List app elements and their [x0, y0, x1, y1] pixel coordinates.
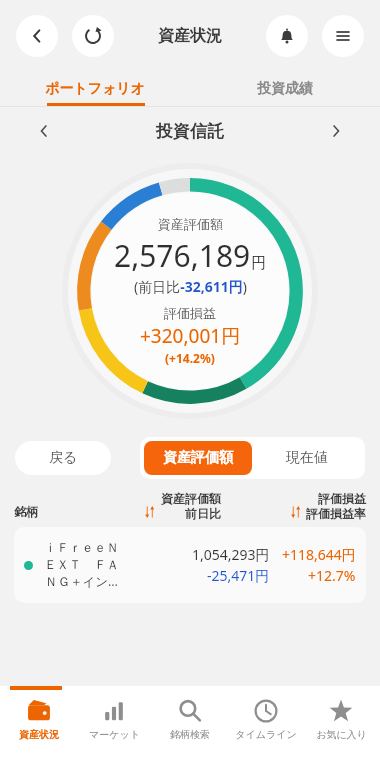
staticText: -25,471円 [207, 566, 270, 585]
staticText: 円 [251, 254, 266, 273]
staticText: +118,644円 [282, 545, 356, 564]
button[interactable]: 評価損益 [229, 491, 366, 521]
staticText: 1,054,293円 [192, 545, 270, 564]
button[interactable]: 銘柄検索 [153, 694, 227, 745]
button[interactable]: お気に入り [304, 694, 378, 745]
staticText: ｉＦｒｅｅＮ [44, 540, 119, 556]
staticText: ポートフォリオ [45, 80, 145, 98]
staticText: タイムライン [235, 728, 297, 741]
staticText: 資産評価額 [158, 216, 223, 232]
button[interactable]: タイムライン [229, 694, 303, 745]
staticText: 資産評価額 [161, 491, 221, 506]
button[interactable]: 現在値 [252, 441, 361, 475]
button[interactable]: Previous [28, 115, 60, 147]
button[interactable]: 資産状況 [2, 694, 76, 745]
staticText: 評価損益 [164, 305, 216, 321]
staticText: 投資信託 [156, 121, 224, 142]
staticText: 資産状況 [158, 26, 222, 46]
button[interactable]: Next [320, 115, 352, 147]
button[interactable]: ｉＦｒｅｅＮ [14, 527, 366, 603]
staticText: 投資成績 [257, 80, 313, 98]
button[interactable]: マーケット [77, 694, 151, 745]
button[interactable]: 戻る [15, 441, 111, 475]
staticText: +12.7% [308, 566, 356, 585]
staticText: ＮＧ＋イン… [45, 573, 118, 590]
button[interactable]: ポートフォリオ [0, 72, 190, 106]
staticText: (+14.2%) [165, 350, 215, 366]
staticText: 資産状況 [19, 728, 59, 741]
staticText: マーケット [89, 728, 140, 741]
button[interactable]: Notifications [266, 15, 308, 57]
staticText: 2,576,189 [114, 235, 251, 276]
staticText: 前日比 [185, 506, 221, 521]
staticText: 銘柄 [14, 504, 84, 519]
staticText: ＥＸＴ ＦＡ [44, 556, 119, 573]
button[interactable]: Back [16, 15, 58, 57]
button[interactable]: 資産評価額 [84, 491, 221, 521]
staticText: 現在値 [286, 449, 328, 467]
staticText: 戻る [49, 449, 78, 467]
button[interactable]: Refresh [72, 15, 114, 57]
button[interactable]: 投資成績 [190, 72, 380, 106]
staticText: 資産評価額 [163, 449, 233, 467]
staticText: 銘柄検索 [170, 728, 210, 741]
staticText: (前日比-32,611円) [134, 277, 247, 296]
staticText: +320,001円 [140, 323, 241, 349]
button[interactable]: Menu [322, 15, 364, 57]
staticText: 評価損益率 [306, 506, 366, 521]
button[interactable]: 資産評価額 [144, 441, 252, 475]
staticText: お気に入り [316, 728, 367, 741]
staticText: 評価損益 [318, 491, 366, 506]
